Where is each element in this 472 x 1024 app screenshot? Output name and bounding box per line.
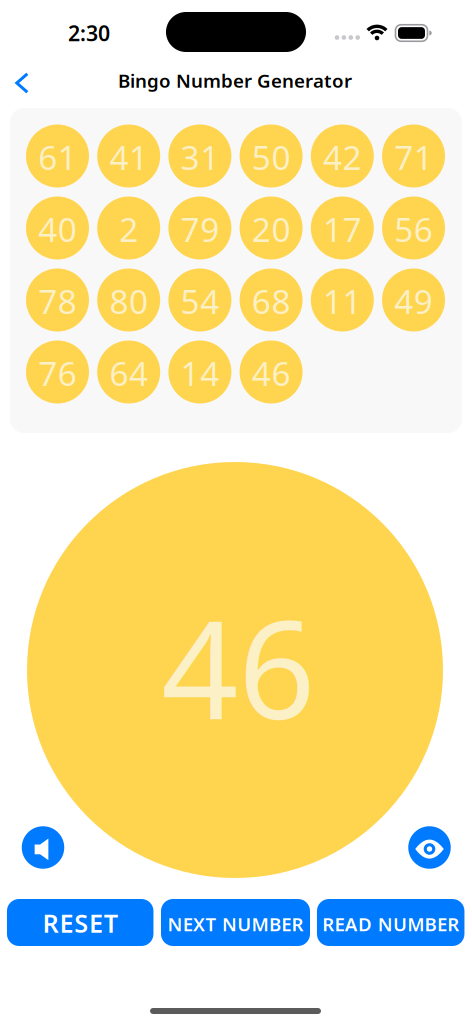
button[interactable]: READ NUMBER [317, 899, 464, 946]
staticText: 68 [252, 279, 290, 323]
staticText: 49 [394, 279, 433, 323]
staticText: NEXT NUMBER [167, 912, 303, 936]
button[interactable]: Back [0, 61, 44, 105]
staticText: Bingo Number Generator [118, 68, 352, 93]
staticText: 71 [394, 135, 433, 179]
staticText: 17 [323, 207, 362, 251]
staticText: 61 [38, 135, 77, 179]
staticText: 64 [109, 351, 148, 395]
button[interactable]: Read aloud [22, 826, 64, 869]
staticText: 31 [181, 135, 219, 179]
staticText: READ NUMBER [322, 912, 459, 936]
staticText: 76 [38, 351, 77, 395]
button[interactable]: Show number [408, 826, 451, 869]
staticText: 42 [323, 135, 362, 179]
staticText: 40 [38, 207, 77, 251]
staticText: 41 [109, 135, 148, 179]
staticText: 46 [252, 351, 290, 395]
staticText: RESET [43, 906, 118, 940]
staticText: 79 [181, 207, 219, 251]
button[interactable]: RESET [7, 899, 153, 946]
staticText: 46 [161, 578, 315, 756]
staticText: 50 [252, 135, 290, 179]
button[interactable]: NEXT NUMBER [161, 899, 310, 946]
staticText: 2 [119, 207, 138, 251]
staticText: 14 [181, 351, 219, 395]
staticText: 54 [181, 279, 219, 323]
staticText: 80 [109, 279, 148, 323]
staticText: 11 [323, 279, 362, 323]
staticText: 2:30 [68, 19, 110, 47]
staticText: 20 [252, 207, 290, 251]
staticText: 56 [394, 207, 433, 251]
staticText: 78 [38, 279, 77, 323]
